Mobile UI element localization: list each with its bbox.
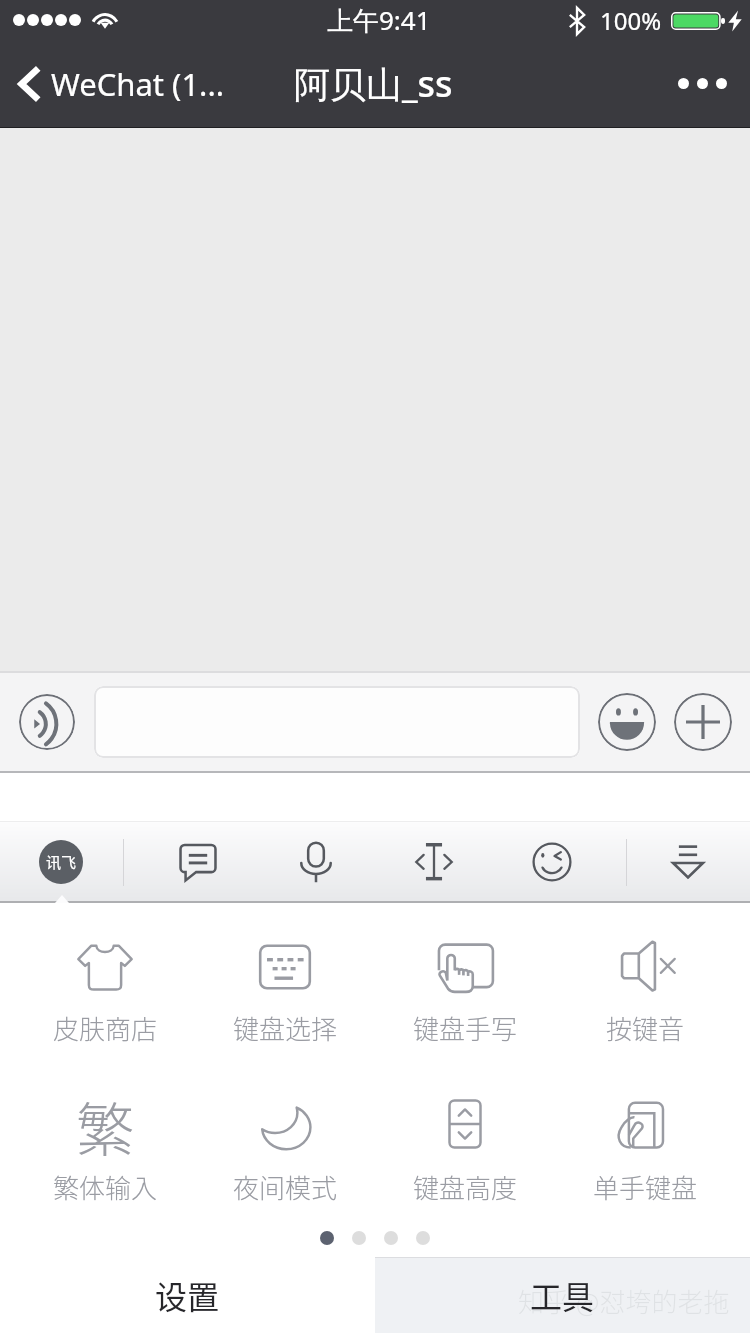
staticText: 繁体输入 (53, 1168, 158, 1206)
staticText: 皮肤商店 (53, 1009, 158, 1047)
button[interactable]: Emoji (493, 821, 611, 903)
staticText: 阿贝山_ss (294, 59, 453, 108)
button[interactable]: iFlytek input method (11, 821, 111, 903)
button[interactable]: 皮肤商店 (15, 903, 195, 1061)
button[interactable]: Keyboard (139, 821, 257, 903)
button[interactable]: More options (654, 40, 750, 127)
staticText: 单手键盘 (593, 1168, 698, 1206)
staticText: WeChat (1... (51, 63, 225, 105)
staticText: 键盘手写 (413, 1009, 518, 1047)
staticText: 100% (600, 4, 662, 37)
staticText: 知乎 @怼垮的老拖 (518, 1282, 730, 1320)
staticText: 设置 (155, 1272, 220, 1318)
button[interactable]: Emoji (598, 693, 656, 751)
staticText: 繁 (76, 1084, 135, 1164)
button[interactable]: 繁 (15, 1061, 195, 1219)
button[interactable]: 键盘选择 (195, 903, 375, 1061)
button[interactable]: 键盘高度 (375, 1061, 555, 1219)
staticText: 按键音 (606, 1009, 685, 1047)
staticText: 键盘高度 (413, 1168, 518, 1206)
staticText: 讯飞 (46, 851, 77, 873)
staticText: 键盘选择 (233, 1009, 338, 1047)
button[interactable]: More functions (674, 693, 732, 751)
staticText: 工具 (530, 1272, 595, 1318)
button[interactable]: 夜间模式 (195, 1061, 375, 1219)
button[interactable]: WeChat (1... (0, 40, 235, 127)
button[interactable]: Voice input (257, 821, 375, 903)
button[interactable]: 工具 (375, 1257, 750, 1333)
staticText: 上午9:41 (327, 2, 431, 38)
button[interactable]: 键盘手写 (375, 903, 555, 1061)
button[interactable]: 设置 (0, 1257, 375, 1333)
staticText: 夜间模式 (233, 1168, 338, 1206)
button[interactable]: Voice input (19, 694, 75, 750)
button[interactable]: 按键音 (555, 903, 735, 1061)
button[interactable]: Hide keyboard (638, 821, 738, 903)
button[interactable] (94, 686, 580, 758)
button[interactable]: 单手键盘 (555, 1061, 735, 1219)
button[interactable]: Edit cursor (375, 821, 493, 903)
